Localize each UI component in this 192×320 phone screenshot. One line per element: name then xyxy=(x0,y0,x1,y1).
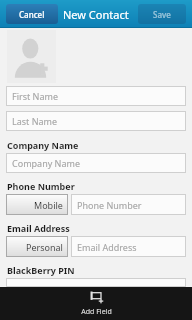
staticText: Phone Number xyxy=(77,199,142,211)
button[interactable]: Mobile xyxy=(6,194,68,215)
staticText: Last Name xyxy=(12,115,58,127)
staticText: Add Field xyxy=(81,307,112,317)
button[interactable]: Add Field xyxy=(71,288,122,319)
staticText: Cancel xyxy=(19,9,45,20)
staticText: New Contact xyxy=(63,7,129,22)
staticText: Company Name xyxy=(12,157,81,169)
button[interactable]: Save xyxy=(138,4,186,24)
button[interactable]: Phone Number xyxy=(71,194,186,215)
button[interactable]: Cancel xyxy=(6,4,58,24)
button[interactable]: Company Name xyxy=(6,153,186,173)
staticText: Email Address xyxy=(7,222,70,234)
staticText: Phone Number xyxy=(7,180,75,192)
staticText: BlackBerry PIN xyxy=(7,264,75,276)
staticText: Personal xyxy=(26,241,63,253)
staticText: First Name xyxy=(12,90,58,102)
staticText: Mobile xyxy=(34,199,63,211)
button[interactable] xyxy=(6,278,186,287)
button[interactable]: Email Address xyxy=(71,236,186,257)
button[interactable]: First Name xyxy=(6,86,186,106)
button[interactable]: Last Name xyxy=(6,111,186,131)
staticText: Save xyxy=(153,9,171,20)
staticText: Company Name xyxy=(7,139,79,151)
button[interactable]: Personal xyxy=(6,236,68,257)
button[interactable]: Add contact picture xyxy=(7,30,56,83)
staticText: Email Address xyxy=(77,241,137,253)
